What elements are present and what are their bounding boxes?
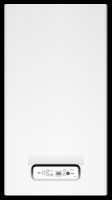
other: Wall hung combi boiler product photo: [0, 0, 112, 200]
button[interactable]: Boiler control panel: [31, 164, 80, 180]
